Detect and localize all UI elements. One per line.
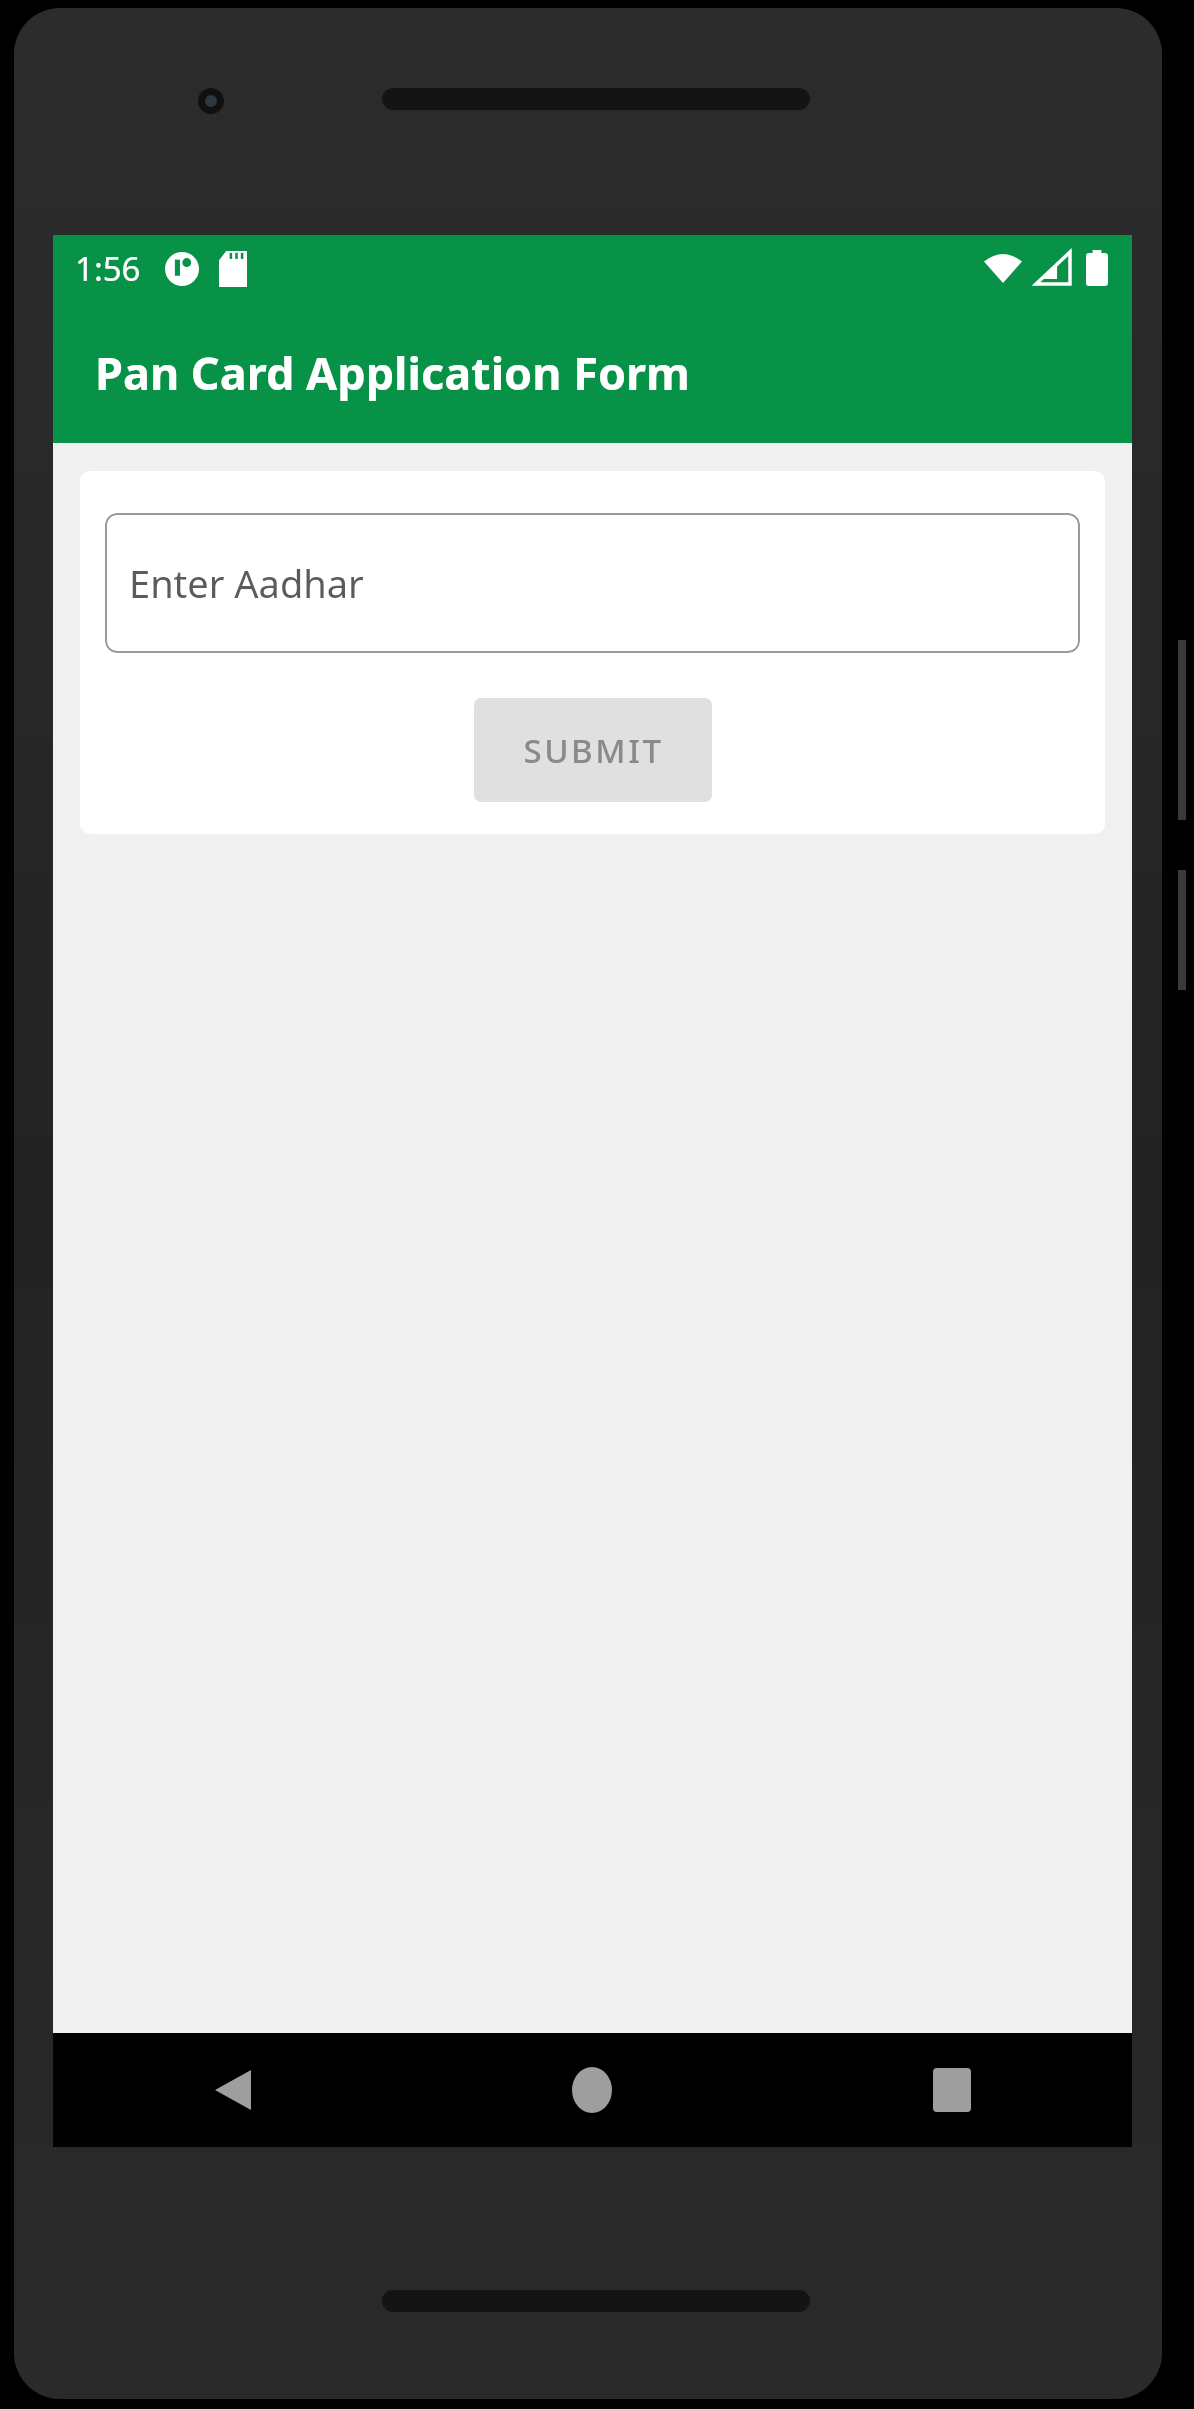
button[interactable]: Home — [412, 2033, 772, 2147]
staticText: Enter Aadhar — [129, 557, 364, 609]
button[interactable]: Recent apps — [772, 2033, 1132, 2147]
button[interactable]: Enter Aadhar — [105, 513, 1080, 653]
staticText: 1:56 — [75, 246, 141, 291]
staticText: Pan Card Application Form — [95, 342, 690, 403]
staticText: SUBMIT — [523, 728, 664, 773]
button[interactable]: SUBMIT — [474, 698, 712, 802]
button[interactable]: Back — [53, 2033, 412, 2147]
